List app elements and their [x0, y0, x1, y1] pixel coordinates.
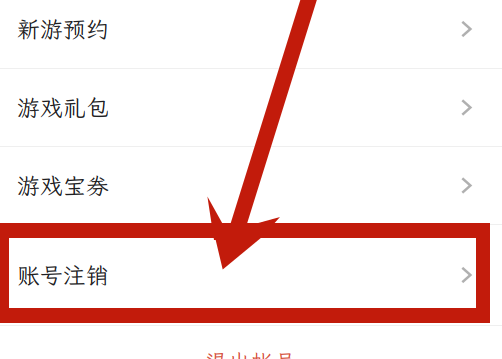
button[interactable]: 游戏礼包 [0, 69, 502, 146]
button[interactable]: 游戏宝券 [0, 147, 502, 224]
staticText: 账号注销 [17, 260, 109, 290]
button[interactable]: 退出帐号 [0, 326, 502, 359]
staticText: 退出帐号 [205, 347, 297, 359]
button[interactable]: 账号注销 [0, 225, 502, 325]
staticText: 游戏宝券 [17, 171, 109, 200]
button[interactable]: 新游预约 [0, 0, 502, 68]
staticText: 游戏礼包 [17, 93, 109, 122]
staticText: 新游预约 [17, 14, 109, 44]
